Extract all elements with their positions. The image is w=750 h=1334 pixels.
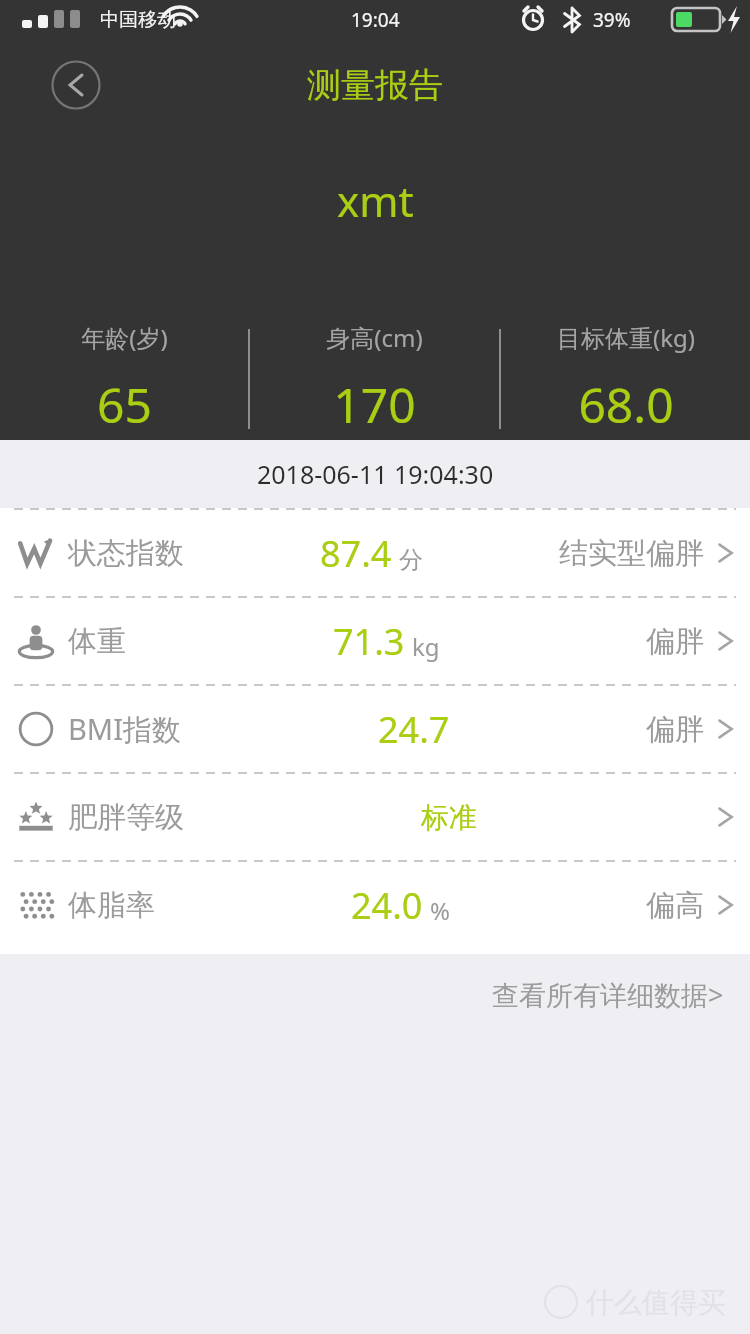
staticText: 24.7 xyxy=(378,705,450,754)
staticText: 肥胖等级 xyxy=(68,799,184,836)
staticText: 测量报告 xyxy=(307,64,443,107)
staticText: 年龄(岁) xyxy=(81,321,168,354)
staticText: 分 xyxy=(399,545,423,575)
staticText: 身高(cm) xyxy=(326,321,423,354)
staticText: 2018-06-11 19:04:30 xyxy=(257,457,494,491)
staticText: BMI指数 xyxy=(68,709,181,749)
staticText: 结实型偏胖 xyxy=(559,535,704,572)
staticText: 65 xyxy=(97,372,152,437)
staticText: 中国移动 xyxy=(100,8,176,32)
staticText: 标准 xyxy=(421,800,477,835)
staticText: 39% xyxy=(593,7,631,33)
staticText: 87.4 xyxy=(320,529,392,578)
button[interactable]: 体脂率 xyxy=(0,862,750,948)
staticText: 71.3 xyxy=(333,617,405,666)
staticText: 偏高 xyxy=(646,887,704,924)
staticText: 24.0 xyxy=(351,881,423,930)
staticText: xmt xyxy=(337,172,414,229)
staticText: 查看所有详细数据> xyxy=(492,976,724,1013)
staticText: 状态指数 xyxy=(68,535,184,572)
staticText: 68.0 xyxy=(578,372,674,437)
button[interactable]: 状态指数 xyxy=(0,510,750,596)
staticText: 体重 xyxy=(68,623,126,660)
staticText: % xyxy=(430,894,450,927)
button[interactable]: 体重 xyxy=(0,598,750,684)
button[interactable]: 查看所有详细数据> xyxy=(492,976,724,1013)
staticText: 19:04 xyxy=(351,7,400,33)
button[interactable]: 肥胖等级 xyxy=(0,774,750,860)
staticText: 偏胖 xyxy=(646,623,704,660)
staticText: 偏胖 xyxy=(646,711,704,748)
staticText: 目标体重(kg) xyxy=(557,321,695,354)
staticText: 170 xyxy=(333,372,416,437)
button[interactable]: Back xyxy=(51,60,101,110)
staticText: 体脂率 xyxy=(68,887,155,924)
button[interactable]: BMI指数 xyxy=(0,686,750,772)
staticText: kg xyxy=(412,630,440,663)
staticText: 什么值得买 xyxy=(586,1285,726,1320)
